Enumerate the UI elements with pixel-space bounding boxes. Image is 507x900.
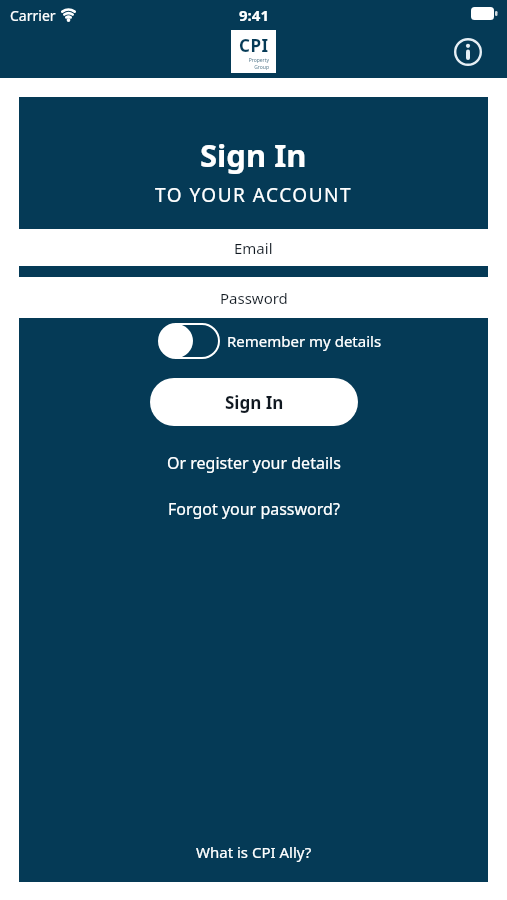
staticText: Sign In [225,391,284,414]
staticText: TO YOUR ACCOUNT [155,182,353,208]
button[interactable]: Or register your details [167,452,341,474]
staticText: Property Group [248,57,269,70]
staticText: Remember my details [227,331,382,351]
button[interactable]: CPI [231,30,276,73]
staticText: Or register your details [167,452,341,474]
button[interactable]: Sign In [150,378,358,426]
staticText: Forgot your password? [168,498,340,520]
staticText: What is CPI Ally? [196,842,312,862]
staticText: 9:41 [239,5,269,25]
button[interactable]: Password [0,277,507,318]
button[interactable]: What is CPI Ally? [196,842,312,862]
button[interactable]: Remember my details [158,323,382,359]
button[interactable] [454,38,482,66]
staticText: Email [234,238,273,258]
staticText: Password [220,288,288,308]
button[interactable]: Forgot your password? [168,498,340,520]
staticText: Carrier [10,6,56,25]
staticText: Sign In [200,134,307,176]
staticText: CPI [239,34,269,57]
button[interactable]: Email [0,229,507,266]
